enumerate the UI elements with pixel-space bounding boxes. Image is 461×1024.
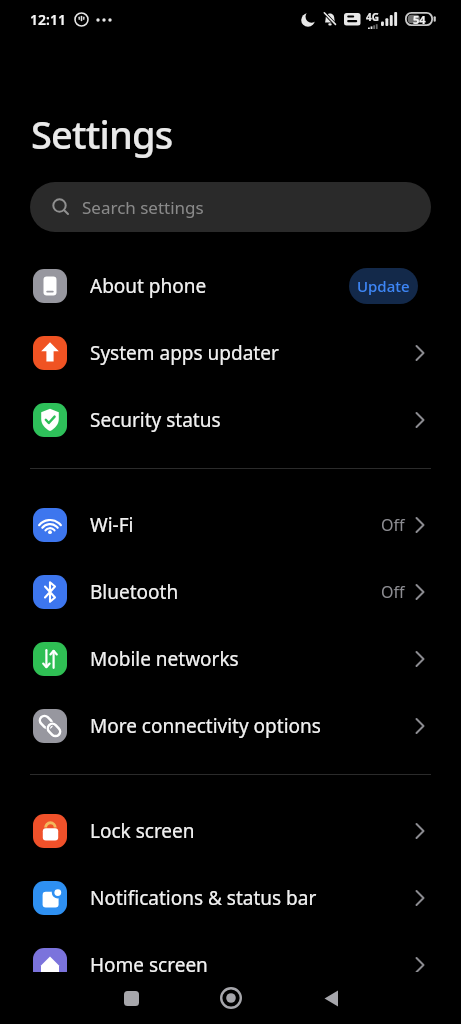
button[interactable]: [201, 978, 261, 1018]
button[interactable]: System apps updater: [0, 319, 461, 386]
staticText: System apps updater: [90, 340, 279, 366]
staticText: Bluetooth: [90, 579, 179, 605]
staticText: Notifications & status bar: [90, 885, 317, 911]
staticText: Off: [381, 581, 405, 603]
staticText: Settings: [31, 108, 173, 160]
button[interactable]: [301, 978, 361, 1018]
button[interactable]: More connectivity options: [0, 692, 461, 759]
button[interactable]: Notifications & status bar: [0, 864, 461, 931]
staticText: Search settings: [82, 196, 204, 219]
button[interactable]: About phone: [0, 252, 461, 319]
staticText: 12:11: [30, 10, 66, 29]
button[interactable]: Bluetooth: [0, 558, 461, 625]
staticText: 54: [413, 12, 426, 27]
staticText: Wi-Fi: [90, 512, 134, 538]
staticText: Security status: [90, 407, 221, 433]
button[interactable]: Security status: [0, 386, 461, 453]
staticText: Mobile networks: [90, 646, 239, 672]
staticText: Off: [381, 514, 405, 536]
staticText: More connectivity options: [90, 713, 321, 739]
button[interactable]: Update: [349, 268, 418, 304]
staticText: Lock screen: [90, 818, 195, 844]
staticText: Update: [357, 276, 410, 296]
button[interactable]: Home screen: [0, 931, 461, 998]
button[interactable]: Mobile networks: [0, 625, 461, 692]
button[interactable]: Lock screen: [0, 797, 461, 864]
staticText: About phone: [90, 273, 207, 299]
button[interactable]: [101, 978, 161, 1018]
staticText: 4G: [366, 10, 379, 24]
button[interactable]: Wi-Fi: [0, 491, 461, 558]
staticText: Home screen: [90, 952, 208, 978]
button[interactable]: Search settings: [30, 182, 431, 232]
